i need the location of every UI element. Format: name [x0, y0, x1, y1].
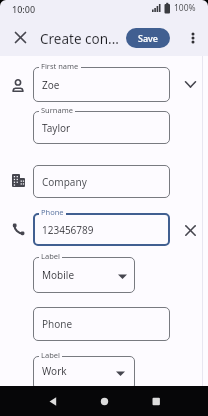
- button[interactable]: [182, 222, 198, 238]
- button[interactable]: [186, 28, 200, 48]
- button[interactable]: [33, 356, 135, 390]
- button[interactable]: [11, 28, 29, 46]
- button[interactable]: [142, 389, 170, 413]
- button[interactable]: [33, 257, 135, 293]
- button[interactable]: [90, 389, 118, 413]
- staticText: Phone: [41, 207, 64, 217]
- staticText: First name: [41, 61, 79, 71]
- staticText: Surname: [41, 105, 73, 115]
- staticText: Phone: [42, 317, 73, 331]
- staticText: 10:00: [12, 3, 36, 15]
- staticText: Create con...: [40, 30, 119, 48]
- button[interactable]: [33, 67, 170, 102]
- button[interactable]: [33, 111, 170, 144]
- staticText: Company: [42, 175, 87, 189]
- staticText: Save: [138, 32, 159, 44]
- staticText: 123456789: [42, 223, 94, 237]
- button[interactable]: [33, 165, 170, 198]
- staticText: Mobile: [42, 268, 75, 282]
- staticText: 100%: [174, 2, 196, 14]
- staticText: Label: [41, 350, 60, 360]
- staticText: Zoe: [42, 78, 60, 92]
- button[interactable]: [182, 76, 198, 92]
- staticText: Label: [41, 251, 60, 261]
- staticText: Work: [42, 364, 67, 378]
- button[interactable]: Save: [126, 28, 170, 48]
- button[interactable]: [40, 389, 68, 413]
- button[interactable]: [33, 213, 170, 246]
- staticText: Taylor: [42, 121, 71, 135]
- button[interactable]: [33, 307, 170, 341]
